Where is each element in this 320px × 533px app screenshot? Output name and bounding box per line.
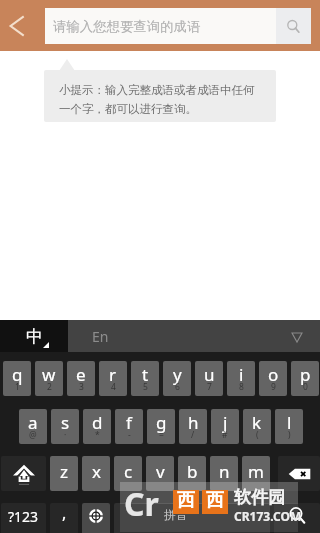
staticText: y [173,363,182,386]
button[interactable]: 拼音 [114,503,270,533]
button[interactable]: Search [274,503,320,533]
button[interactable]: f [115,409,143,444]
button[interactable]: En [68,320,320,352]
button[interactable]: ?123 [1,503,46,533]
button[interactable]: v [146,456,174,491]
button[interactable]: z [50,456,78,491]
button[interactable]: g [147,409,175,444]
staticText: = [159,429,164,441]
button[interactable]: s [51,409,79,444]
staticText: t [142,363,149,386]
staticText: 小提示：输入完整成语或者成语中任何一个字，都可以进行查询。 [59,83,263,116]
staticText: # [222,429,228,441]
staticText: k [252,411,262,434]
staticText: s [61,411,70,434]
staticText: u [204,363,215,386]
button[interactable]: a [19,409,47,444]
staticText: c [124,460,133,483]
button[interactable]: i [227,361,255,396]
staticText: f [126,411,132,434]
staticText: En [92,327,109,346]
button[interactable]: u [195,361,223,396]
button[interactable]: q [3,361,31,396]
staticText: 拼音 [164,507,188,522]
staticText: z [60,460,68,483]
staticText: o [268,363,279,386]
button[interactable]: Back [0,0,45,51]
staticText: j [223,411,228,434]
staticText: b [187,460,198,483]
staticText: 1 [15,381,20,393]
button[interactable]: w [35,361,63,396]
staticText: ) [288,429,291,441]
button[interactable]: m [242,456,270,491]
staticText: q [12,363,23,386]
staticText: h [188,411,199,434]
button[interactable]: b [178,456,206,491]
staticText: 2 [47,381,52,393]
staticText: 9 [271,381,276,393]
staticText: , [62,502,67,524]
staticText: · [64,429,67,441]
staticText: i [239,363,244,386]
staticText: 8 [239,381,244,393]
staticText: 3 [79,381,84,393]
staticText: n [219,460,230,483]
button[interactable]: o [259,361,287,396]
button[interactable]: n [210,456,238,491]
staticText: r [109,363,117,386]
staticText: 西 [177,489,195,512]
staticText: g [156,411,167,434]
staticText: 0 [303,381,308,393]
staticText: CR173.COM [234,508,302,524]
staticText: - [128,429,131,441]
button[interactable]: k [243,409,271,444]
staticText: / [191,429,195,441]
button[interactable]: p [291,361,319,396]
button[interactable]: t [131,361,159,396]
staticText: x [92,460,101,483]
button[interactable]: Backspace [278,456,320,491]
staticText: @ [29,429,37,441]
staticText: v [156,460,165,483]
staticText: ( [256,429,259,441]
staticText: d [92,411,103,434]
button[interactable]: d [83,409,111,444]
button[interactable]: , [50,503,78,533]
button[interactable]: c [114,456,142,491]
button[interactable]: x [82,456,110,491]
button[interactable]: Switch language [82,503,110,533]
button[interactable]: y [163,361,191,396]
staticText: 中 [26,326,43,347]
staticText: 7 [207,381,212,393]
staticText: e [76,363,86,386]
staticText: 5 [143,381,148,393]
button[interactable]: Search [276,8,311,44]
button[interactable]: 中 [0,320,68,352]
button[interactable]: l [275,409,303,444]
staticText: 6 [175,381,180,393]
button[interactable]: j [211,409,239,444]
staticText: * [95,429,100,441]
button[interactable]: r [99,361,127,396]
staticText: 4 [111,381,116,393]
staticText: ?123 [8,507,39,526]
staticText: 请输入您想要查询的成语 [53,18,201,35]
staticText: 软件园 [234,487,285,508]
staticText: l [287,411,292,434]
staticText: 西 [206,489,224,512]
staticText: a [28,411,38,434]
staticText: m [248,460,264,483]
staticText: p [300,363,311,386]
button[interactable]: h [179,409,207,444]
staticText: w [42,363,56,386]
button[interactable]: 请输入您想要查询的成语 [45,8,276,44]
button[interactable]: Shift [1,456,46,491]
staticText: Cr [124,482,159,526]
button[interactable]: e [67,361,95,396]
